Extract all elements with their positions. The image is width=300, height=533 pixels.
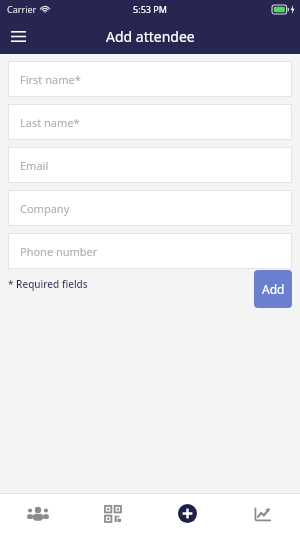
staticText: Phone number	[20, 244, 98, 259]
staticText: Carrier	[7, 3, 37, 15]
button[interactable]: Statistics	[225, 494, 300, 533]
button[interactable]: Email	[8, 147, 292, 183]
button[interactable]: Attendees	[0, 494, 75, 533]
staticText: First name*	[20, 72, 81, 87]
staticText: * Required fields	[8, 277, 88, 291]
button[interactable]: Add	[254, 270, 292, 308]
button[interactable]: Company	[8, 190, 292, 226]
button[interactable]: Add	[150, 494, 225, 533]
staticText: Email	[20, 158, 49, 173]
button[interactable]: First name*	[8, 61, 292, 97]
staticText: Company	[20, 201, 70, 216]
button[interactable]: Phone number	[8, 233, 292, 269]
button[interactable]: Last name*	[8, 104, 292, 140]
button[interactable]: Menu	[0, 18, 36, 54]
staticText: Add attendee	[106, 27, 195, 46]
staticText: Add	[262, 281, 285, 297]
staticText: Last name*	[20, 115, 80, 130]
staticText: 5:53 PM	[133, 3, 167, 15]
button[interactable]: Scan QR code	[75, 494, 150, 533]
